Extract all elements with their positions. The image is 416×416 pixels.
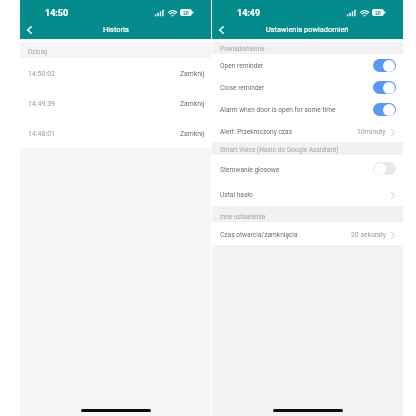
button[interactable]: 14:48:01 xyxy=(20,118,211,148)
staticText: 10minuty xyxy=(357,128,386,136)
staticText: 14:49 xyxy=(237,8,261,19)
button[interactable]: Ustal hasło xyxy=(212,182,403,206)
button[interactable]: Switch on xyxy=(373,81,396,94)
button[interactable]: Alert: Przekroczony czas xyxy=(212,120,403,142)
staticText: 14:50 xyxy=(45,8,69,19)
staticText: Alarm when door is open for some time xyxy=(220,106,336,114)
button[interactable]: Switch on xyxy=(373,103,396,116)
staticText: 20 xyxy=(183,10,189,16)
staticText: Smart Voice (Hasło do Google Assistant) xyxy=(220,146,339,154)
staticText: Alert: Przekroczony czas xyxy=(220,128,293,136)
staticText: Sterowanie głosowe xyxy=(220,166,280,174)
button[interactable]: Alarm when door is open for some time xyxy=(212,98,403,120)
staticText: 14:48:01 xyxy=(28,130,55,138)
button[interactable]: Back xyxy=(22,21,37,39)
button[interactable]: Switch off xyxy=(373,162,396,175)
staticText: Dzisiaj xyxy=(28,48,48,56)
staticText: Zamknij xyxy=(180,70,205,78)
staticText: Powiadomienia xyxy=(220,45,265,53)
staticText: 20 xyxy=(375,10,381,16)
staticText: Historia xyxy=(103,25,129,34)
staticText: Ustawienia powiadomień xyxy=(266,25,349,34)
staticText: Ustal hasło xyxy=(220,191,253,199)
button[interactable]: 14:50:02 xyxy=(20,58,211,88)
button[interactable]: Sterowanie głosowe xyxy=(212,155,403,182)
staticText: Czas otwarcia/zamknięcia xyxy=(220,231,298,239)
staticText: 20 sekundy xyxy=(351,231,386,239)
button[interactable]: Close reminder xyxy=(212,76,403,98)
button[interactable]: Back xyxy=(214,21,229,39)
staticText: 14:50:02 xyxy=(28,70,55,78)
button[interactable]: Open reminder xyxy=(212,54,403,76)
staticText: Open reminder xyxy=(220,62,264,70)
staticText: Zamknij xyxy=(180,130,205,138)
button[interactable]: Czas otwarcia/zamknięcia xyxy=(212,222,403,245)
staticText: Zamknij xyxy=(180,100,205,108)
button[interactable]: Switch on xyxy=(373,59,396,72)
staticText: Inne ustawienia xyxy=(220,213,266,221)
button[interactable]: 14:49:39 xyxy=(20,88,211,118)
staticText: Close reminder xyxy=(220,84,265,92)
staticText: 14:49:39 xyxy=(28,100,55,108)
